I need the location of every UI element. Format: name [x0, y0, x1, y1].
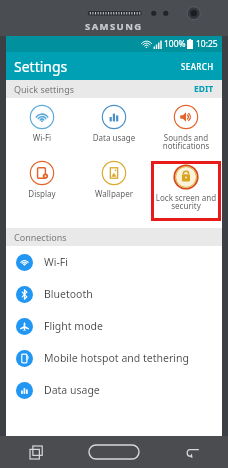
button[interactable]: Home — [88, 444, 140, 460]
staticText: 10:25 — [196, 38, 218, 50]
button[interactable]: SEARCH — [173, 55, 222, 78]
staticText: 100% — [164, 38, 186, 50]
button[interactable]: Lock screen and security — [154, 164, 218, 218]
staticText: Flight mode — [44, 319, 103, 333]
button[interactable]: Bluetooth — [6, 278, 222, 310]
staticText: Wi-Fi — [7, 132, 77, 143]
staticText: Data usage — [79, 132, 149, 143]
staticText: EDIT — [194, 83, 214, 95]
button[interactable]: Back — [180, 440, 204, 464]
button[interactable]: Display — [6, 160, 78, 222]
button[interactable]: Flight mode — [6, 310, 222, 342]
staticText: Quick settings — [14, 83, 74, 95]
button[interactable]: Wi-Fi — [6, 246, 222, 278]
staticText: Bluetooth — [44, 287, 93, 301]
staticText: Lock screen and security — [155, 192, 217, 211]
staticText: Connections — [14, 231, 67, 243]
button[interactable]: Wallpaper — [78, 160, 150, 222]
button[interactable]: Data usage — [78, 104, 150, 160]
staticText: Settings — [14, 57, 68, 76]
staticText: Display — [7, 188, 77, 199]
staticText: Wallpaper — [79, 188, 149, 199]
staticText: Data usage — [44, 383, 100, 397]
staticText: Wi-Fi — [44, 255, 69, 269]
button[interactable]: Data usage — [6, 374, 222, 406]
button[interactable]: Sounds and notifications — [150, 104, 222, 160]
button[interactable]: Wi-Fi — [6, 104, 78, 160]
staticText: Mobile hotspot and tethering — [44, 351, 189, 365]
staticText: Sounds and notifications — [151, 132, 221, 151]
staticText: SEARCH — [181, 61, 214, 72]
staticText: SAMSUNG — [85, 20, 143, 33]
button[interactable]: EDIT — [186, 80, 222, 98]
button[interactable]: Mobile hotspot and tethering — [6, 342, 222, 374]
button[interactable]: Recents — [24, 440, 48, 464]
